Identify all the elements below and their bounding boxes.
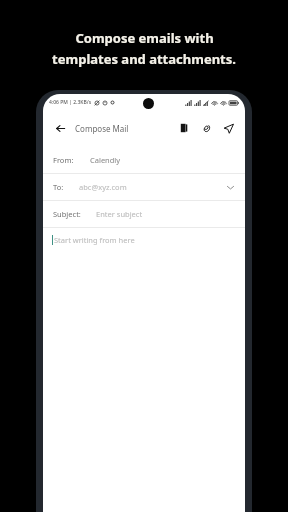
button[interactable]: Back [51, 119, 69, 137]
button[interactable]: Templates [175, 119, 193, 137]
staticText: To: [53, 182, 64, 192]
staticText: Calendly [90, 155, 121, 165]
staticText: 4:06 PM | 2.3KB/s [49, 99, 92, 106]
staticText: Compose emails with [75, 29, 214, 47]
staticText: Start writing from here [54, 235, 135, 245]
button[interactable]: Send [219, 119, 237, 137]
staticText: abc@xyz.com [79, 182, 127, 192]
staticText: From: [53, 155, 74, 165]
staticText: Compose Mail [75, 123, 129, 134]
button[interactable]: Attach file [197, 119, 215, 137]
staticText: Enter subject [96, 209, 143, 219]
button[interactable]: Subject: [43, 201, 245, 227]
button[interactable]: Start writing from here [43, 228, 245, 252]
button[interactable]: To: [43, 174, 245, 200]
staticText: Subject: [53, 209, 81, 219]
button[interactable]: From: [43, 147, 245, 173]
staticText: templates and attachments. [52, 50, 236, 68]
